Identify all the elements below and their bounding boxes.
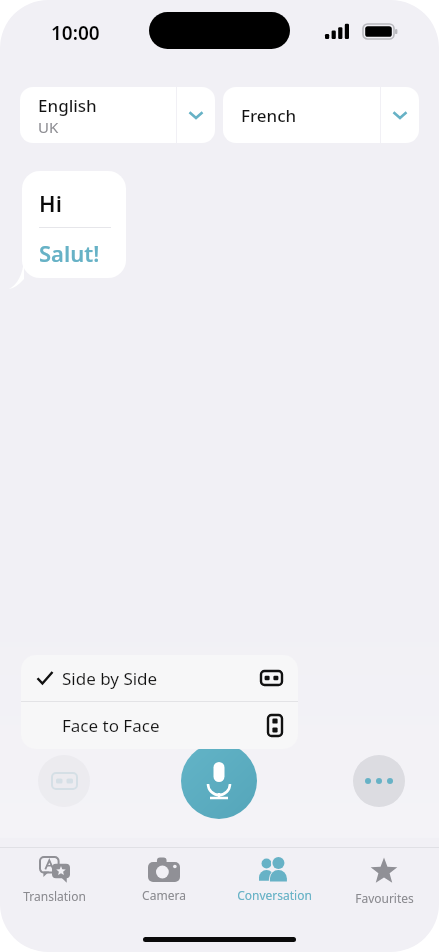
staticText: Conversation bbox=[237, 887, 312, 903]
staticText: French bbox=[241, 104, 297, 127]
button[interactable]: Record bbox=[181, 743, 257, 819]
button[interactable]: Translation bbox=[0, 848, 109, 910]
staticText: Hi bbox=[39, 188, 62, 218]
staticText: Salut! bbox=[39, 238, 100, 268]
button[interactable]: Hi bbox=[22, 171, 126, 278]
button[interactable]: Favourites bbox=[329, 848, 439, 910]
staticText: 10:00 bbox=[51, 20, 100, 46]
staticText: Translation bbox=[23, 888, 86, 904]
button[interactable]: Conversation bbox=[219, 848, 329, 910]
staticText: Face to Face bbox=[62, 714, 160, 737]
staticText: Side by Side bbox=[62, 667, 158, 690]
staticText: Favourites bbox=[355, 890, 414, 906]
staticText: English bbox=[38, 94, 97, 117]
button[interactable]: French bbox=[223, 87, 419, 143]
button[interactable]: More options bbox=[353, 755, 405, 807]
button[interactable]: Side by Side bbox=[21, 655, 298, 701]
button[interactable]: English bbox=[20, 87, 215, 143]
button[interactable]: Face to Face bbox=[21, 702, 298, 749]
staticText: Camera bbox=[142, 887, 186, 903]
button[interactable]: Camera bbox=[109, 848, 219, 910]
button[interactable]: Side by side view bbox=[38, 755, 90, 807]
staticText: UK bbox=[38, 117, 59, 137]
